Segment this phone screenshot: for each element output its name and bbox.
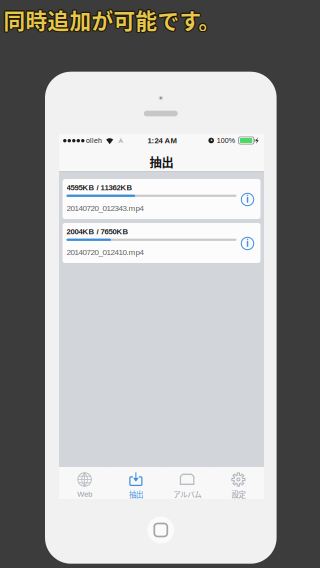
staticText: 同時追加が可能です。 [4,3,221,34]
staticText: 抽出 [129,489,143,500]
button[interactable]: 4595KB / 11362KB [62,179,260,219]
staticText: 同時追加が可能です。 [3,5,220,36]
staticText: 同時追加が可能です。 [3,4,220,35]
staticText: 20140720_012410.mp4 [66,248,143,257]
staticText: アルバム [173,489,201,500]
staticText: 100% [217,137,235,144]
staticText: 同時追加が可能です。 [3,3,220,34]
staticText: 同時追加が可能です。 [3,5,220,36]
staticText: 同時追加が可能です。 [4,5,221,36]
staticText: 2004KB / 7650KB [66,227,128,236]
staticText: Web [77,490,92,498]
staticText: 4595KB / 11362KB [66,183,132,192]
button[interactable]: 設定 [213,467,264,499]
staticText: 同時追加が可能です。 [2,4,219,35]
staticText: 同時追加が可能です。 [3,3,220,34]
button[interactable]: Web [59,467,110,499]
staticText: 同時追加が可能です。 [5,4,222,35]
button[interactable]: アルバム [161,467,213,499]
staticText: i [246,194,249,205]
staticText: i [246,238,249,249]
staticText: 抽出 [149,153,173,171]
staticText: olleh [86,137,102,144]
staticText: 20140720_012343.mp4 [66,204,143,213]
button[interactable]: 抽出 [110,467,161,499]
staticText: 1:24 AM [147,136,176,145]
button[interactable]: Details [236,230,258,256]
button[interactable]: 2004KB / 7650KB [62,223,260,263]
staticText: 設定 [231,489,245,500]
button[interactable]: Details [236,186,258,212]
